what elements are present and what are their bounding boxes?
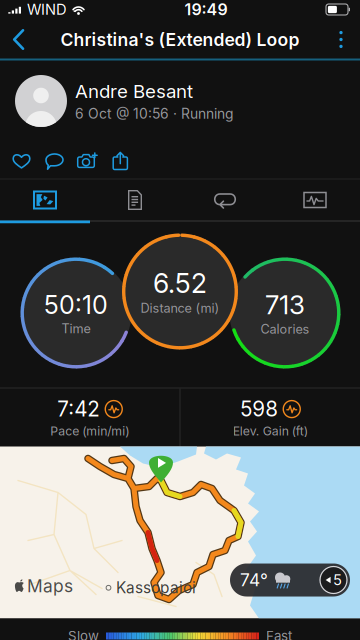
button[interactable]: More options <box>322 20 360 58</box>
staticText: 19:49 <box>184 0 227 19</box>
staticText: 6 Oct @ 10:56 · Running <box>75 105 234 122</box>
staticText: 5 <box>333 571 342 589</box>
staticText: 74° <box>240 569 268 590</box>
button[interactable]: Share <box>104 146 137 176</box>
staticText: Distance (mi) <box>140 300 219 316</box>
staticText: Kassopaioi <box>116 578 196 597</box>
staticText: 7:42 <box>57 397 100 422</box>
staticText: WIND <box>27 1 67 18</box>
staticText: Pace (min/mi) <box>50 424 129 438</box>
button[interactable]: Splits <box>90 179 180 220</box>
staticText: 713 <box>265 289 305 321</box>
button[interactable]: Heart rate <box>270 179 360 220</box>
staticText: Christina's (Extended) Loop <box>60 29 299 50</box>
staticText: 6.52 <box>153 267 207 299</box>
button[interactable]: Like <box>5 146 38 176</box>
button[interactable]: Add photo <box>71 146 104 176</box>
staticText: Fast <box>266 628 292 640</box>
staticText: Slow <box>68 628 99 640</box>
button[interactable]: Back <box>0 20 38 58</box>
staticText: Time <box>61 321 90 336</box>
button[interactable]: Laps <box>180 179 270 220</box>
staticText: 50:10 <box>44 290 108 320</box>
button[interactable]: Map <box>0 179 90 220</box>
button[interactable]: Comment <box>38 146 71 176</box>
staticText: Calories <box>260 322 309 337</box>
staticText: Maps <box>27 575 73 596</box>
staticText: Andre Besant <box>75 80 193 102</box>
staticText: Elev. Gain (ft) <box>233 424 308 438</box>
staticText: 598 <box>240 397 278 422</box>
